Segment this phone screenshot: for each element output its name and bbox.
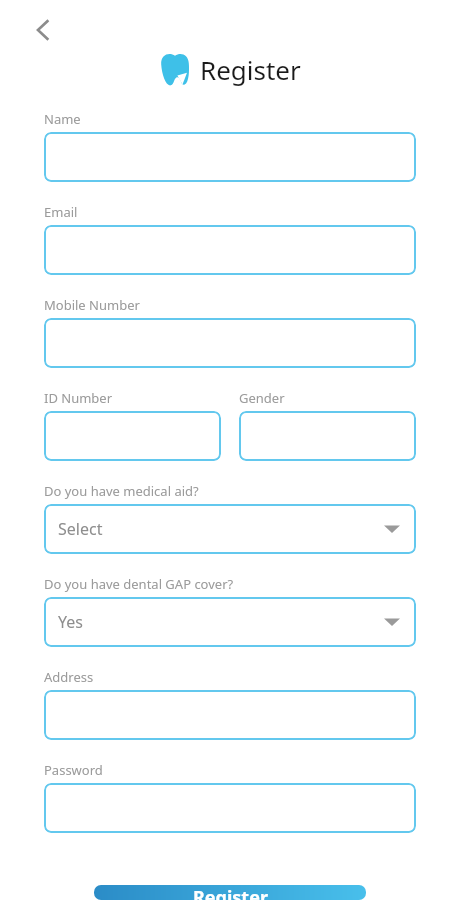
staticText: Do you have medical aid?: [44, 482, 199, 500]
staticText: Email: [44, 203, 78, 221]
button[interactable]: [44, 318, 416, 368]
button[interactable]: [44, 225, 416, 275]
staticText: Do you have dental GAP cover?: [44, 575, 234, 593]
staticText: Mobile Number: [44, 296, 140, 314]
button[interactable]: Register: [94, 885, 366, 900]
staticText: Register: [193, 885, 268, 900]
button[interactable]: [239, 411, 416, 461]
button[interactable]: [44, 690, 416, 740]
staticText: Password: [44, 761, 103, 779]
button[interactable]: [44, 411, 221, 461]
staticText: Select: [58, 518, 103, 540]
staticText: Yes: [58, 611, 83, 633]
staticText: Name: [44, 110, 81, 128]
staticText: Gender: [239, 389, 285, 407]
button[interactable]: [44, 132, 416, 182]
staticText: ID Number: [44, 389, 113, 407]
staticText: Address: [44, 668, 94, 686]
button[interactable]: [44, 783, 416, 833]
button[interactable]: Back: [21, 8, 65, 52]
button[interactable]: Select: [44, 504, 416, 554]
staticText: Register: [200, 52, 301, 87]
button[interactable]: Yes: [44, 597, 416, 647]
